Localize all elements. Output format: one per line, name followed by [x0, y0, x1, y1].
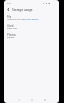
- staticText: Used by this app com.andro: [7, 17, 59, 20]
- staticText: Delete: [7, 35, 59, 38]
- button[interactable]: Back: [5, 6, 11, 12]
- button[interactable]: Used: [4, 23, 59, 32]
- staticText: Used: [7, 24, 14, 28]
- staticText: Storage usage: [12, 8, 33, 12]
- button[interactable]: Recent apps: [38, 96, 51, 103]
- button[interactable]: Photos: [4, 32, 59, 41]
- staticText: File: [7, 15, 12, 19]
- button[interactable]: File: [4, 14, 59, 23]
- button[interactable]: Back: [12, 96, 25, 103]
- staticText: 9:41: [7, 2, 12, 5]
- staticText: Data use: [7, 26, 59, 29]
- staticText: Photos: [7, 33, 16, 37]
- button[interactable]: Home: [25, 96, 38, 103]
